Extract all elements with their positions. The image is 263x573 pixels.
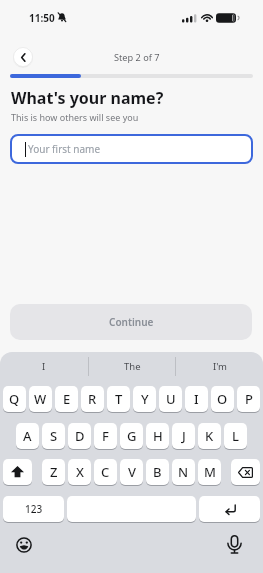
button[interactable]: C: [94, 459, 117, 485]
button[interactable]: [67, 496, 196, 522]
staticText: The: [124, 360, 141, 373]
staticText: Continue: [109, 315, 154, 329]
button[interactable]: Y: [133, 386, 156, 412]
staticText: H: [153, 427, 163, 445]
staticText: I: [42, 360, 46, 373]
button[interactable]: Your first name: [10, 134, 253, 164]
button[interactable]: N: [172, 459, 195, 485]
staticText: Y: [141, 390, 149, 408]
button[interactable]: R: [81, 386, 104, 412]
staticText: C: [101, 463, 110, 481]
button[interactable]: Continue: [10, 304, 252, 340]
staticText: Z: [50, 463, 58, 481]
button[interactable]: [226, 535, 246, 555]
staticText: V: [128, 463, 136, 481]
button[interactable]: X: [68, 459, 91, 485]
button[interactable]: G: [120, 423, 143, 449]
staticText: R: [88, 390, 97, 408]
button[interactable]: B: [146, 459, 169, 485]
staticText: Q: [9, 390, 20, 408]
staticText: I: [194, 390, 199, 408]
button[interactable]: 123: [3, 496, 64, 522]
staticText: O: [217, 390, 228, 408]
staticText: L: [232, 427, 239, 445]
staticText: M: [204, 463, 216, 481]
button[interactable]: T: [107, 386, 130, 412]
staticText: I'm: [213, 360, 227, 373]
button[interactable]: [13, 47, 33, 67]
button[interactable]: The: [88, 359, 176, 374]
button[interactable]: Z: [42, 459, 65, 485]
button[interactable]: L: [224, 423, 247, 449]
staticText: E: [63, 390, 71, 408]
staticText: N: [178, 463, 189, 481]
staticText: T: [115, 390, 123, 408]
button[interactable]: E: [55, 386, 78, 412]
button[interactable]: I: [0, 359, 88, 374]
button[interactable]: [231, 459, 260, 485]
button[interactable]: W: [29, 386, 52, 412]
staticText: J: [182, 427, 186, 445]
button[interactable]: D: [68, 423, 91, 449]
staticText: K: [205, 427, 214, 445]
staticText: 11:50: [29, 11, 55, 25]
button[interactable]: I: [185, 386, 208, 412]
staticText: This is how others will see you: [11, 111, 139, 123]
button[interactable]: K: [198, 423, 221, 449]
staticText: W: [34, 390, 47, 408]
button[interactable]: I'm: [176, 359, 263, 374]
staticText: A: [23, 427, 32, 445]
button[interactable]: [11, 532, 36, 557]
staticText: P: [245, 390, 253, 408]
button[interactable]: P: [237, 386, 260, 412]
button[interactable]: Q: [3, 386, 26, 412]
button[interactable]: J: [172, 423, 195, 449]
staticText: U: [166, 390, 176, 408]
button[interactable]: [199, 496, 260, 522]
staticText: Step 2 of 7: [114, 51, 160, 64]
button[interactable]: F: [94, 423, 117, 449]
staticText: X: [76, 463, 84, 481]
button[interactable]: S: [42, 423, 65, 449]
staticText: S: [50, 427, 58, 445]
button[interactable]: [3, 459, 32, 485]
staticText: F: [102, 427, 109, 445]
staticText: Your first name: [28, 142, 101, 156]
button[interactable]: H: [146, 423, 169, 449]
staticText: What's your name?: [11, 87, 164, 109]
staticText: 123: [25, 502, 43, 516]
button[interactable]: V: [120, 459, 143, 485]
button[interactable]: U: [159, 386, 182, 412]
button[interactable]: O: [211, 386, 234, 412]
staticText: D: [75, 427, 85, 445]
staticText: B: [153, 463, 162, 481]
staticText: G: [127, 427, 137, 445]
button[interactable]: A: [16, 423, 39, 449]
button[interactable]: M: [198, 459, 221, 485]
